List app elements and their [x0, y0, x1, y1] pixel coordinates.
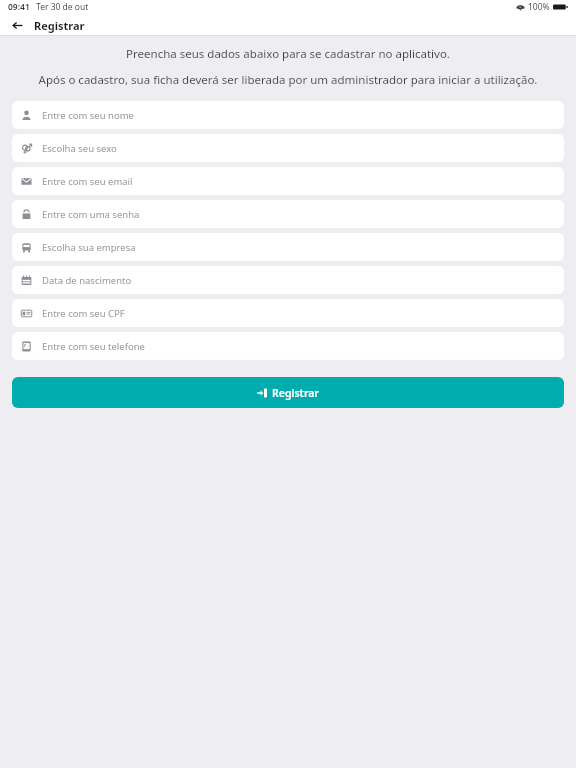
button[interactable]: Back — [8, 16, 26, 34]
staticText: Entre com seu CPF — [42, 307, 125, 320]
staticText: Preencha seus dados abaixo para se cadas… — [16, 46, 560, 62]
button[interactable]: Data de nascimento — [12, 266, 564, 294]
staticText: Entre com uma senha — [42, 208, 140, 221]
staticText: Após o cadastro, sua ficha deverá ser li… — [16, 72, 560, 88]
button[interactable]: Entre com uma senha — [12, 200, 564, 228]
button[interactable]: Escolha sua empresa — [12, 233, 564, 261]
staticText: Registrar — [34, 18, 85, 33]
staticText: Registrar — [272, 386, 319, 400]
button[interactable]: Entre com seu telefone — [12, 332, 564, 360]
staticText: Data de nascimento — [42, 274, 132, 287]
button[interactable]: Entre com seu email — [12, 167, 564, 195]
button[interactable]: Escolha seu sexo — [12, 134, 564, 162]
staticText: 09:41 — [8, 1, 30, 13]
staticText: Escolha seu sexo — [42, 142, 117, 155]
staticText: Escolha sua empresa — [42, 241, 136, 254]
staticText: Entre com seu telefone — [42, 340, 145, 353]
staticText: Ter 30 de out — [36, 1, 89, 13]
staticText: Entre com seu nome — [42, 109, 134, 122]
staticText: Entre com seu email — [42, 175, 133, 188]
button[interactable]: Registrar — [12, 377, 564, 408]
button[interactable]: Entre com seu nome — [12, 101, 564, 129]
button[interactable]: Entre com seu CPF — [12, 299, 564, 327]
staticText: 100% — [528, 1, 550, 13]
